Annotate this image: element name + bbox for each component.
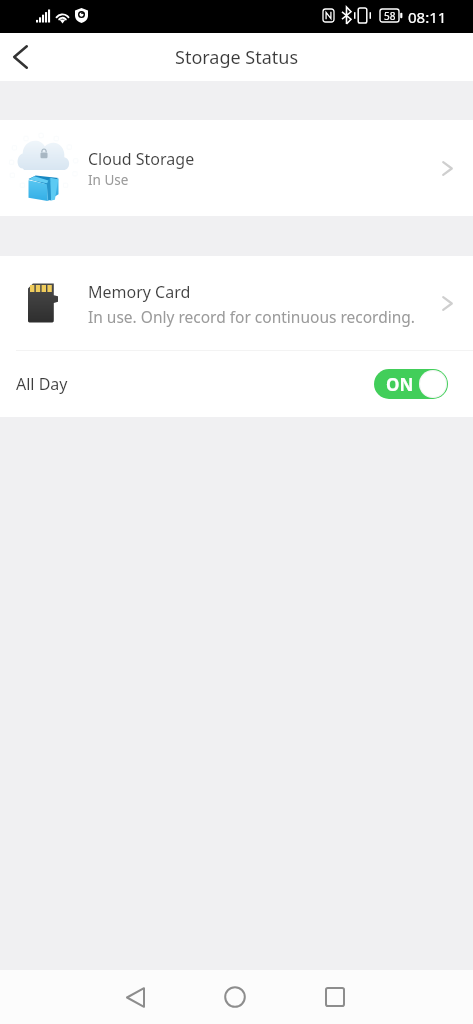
button[interactable]: Recent apps [285,970,385,1024]
staticText: In Use [88,171,129,189]
staticText: Cloud Storage [88,148,195,170]
staticText: ON [386,373,414,396]
button[interactable]: All Day on [374,369,448,399]
staticText: 08:11 [408,7,447,27]
button[interactable]: Memory Card [0,256,473,350]
staticText: Storage Status [175,45,299,70]
staticText: In use. Only record for continuous recor… [88,306,415,327]
button[interactable]: Back [85,970,185,1024]
button[interactable]: All Day [0,351,473,417]
staticText: All Day [16,373,374,395]
button[interactable]: Home [185,970,285,1024]
button[interactable]: Cloud Storage [0,120,473,216]
staticText: 58 [384,9,396,23]
button[interactable]: Back [0,33,40,81]
staticText: Memory Card [88,281,191,303]
